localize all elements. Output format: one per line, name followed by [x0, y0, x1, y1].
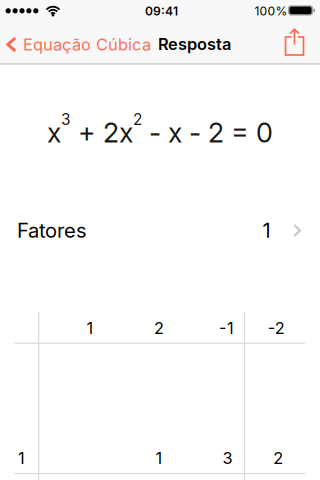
button[interactable]: Fatores [0, 208, 320, 252]
staticText: 3 [223, 448, 233, 468]
button[interactable]: Share [281, 27, 307, 57]
staticText: Fatores [17, 218, 87, 243]
staticText: 1 [86, 318, 93, 338]
button[interactable]: Equação Cúbica [6, 35, 151, 54]
staticText: 09:41 [145, 4, 178, 19]
staticText: x3 + 2x2 - x - 2 = 0 [47, 110, 273, 149]
staticText: 1 [155, 448, 162, 468]
staticText: Equação Cúbica [23, 35, 151, 54]
staticText: Resposta [158, 34, 231, 54]
staticText: -1 [219, 318, 234, 338]
staticText: 1 [262, 218, 270, 243]
staticText: 100% [254, 4, 287, 19]
staticText: 2 [273, 448, 283, 468]
staticText: -2 [268, 318, 285, 338]
staticText: 1 [18, 448, 25, 468]
staticText: 2 [154, 318, 164, 338]
